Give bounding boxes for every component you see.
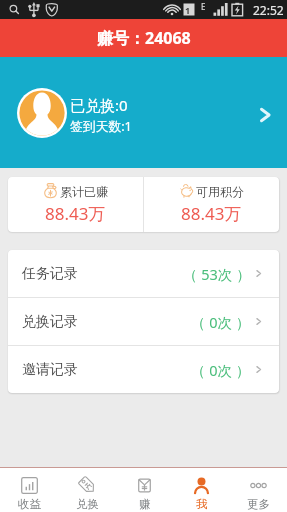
- staticText: （ 0次 ）: [191, 360, 251, 380]
- staticText: 兑换记录: [22, 313, 78, 331]
- staticText: 我: [196, 497, 208, 511]
- button[interactable]: 赚: [116, 468, 173, 512]
- staticText: 赚: [139, 497, 151, 511]
- staticText: 累计已赚: [60, 184, 108, 199]
- staticText: 可用积分: [196, 184, 244, 199]
- staticText: 邀请记录: [22, 361, 78, 379]
- button[interactable]: 累计已赚: [8, 177, 143, 232]
- staticText: 88.43万: [45, 202, 106, 225]
- staticText: 收益: [18, 497, 41, 511]
- staticText: 兑换: [76, 497, 99, 511]
- staticText: （ 0次 ）: [191, 312, 251, 332]
- button[interactable]: 可用积分: [144, 177, 279, 232]
- button[interactable]: 我: [173, 468, 230, 512]
- staticText: 1: [185, 4, 191, 16]
- staticText: 更多: [247, 497, 270, 511]
- button[interactable]: 已兑换:0: [0, 57, 287, 168]
- staticText: 88.43万: [181, 202, 242, 225]
- staticText: 任务记录: [22, 265, 78, 283]
- staticText: 赚号：24068: [97, 27, 191, 49]
- button[interactable]: 收益: [0, 468, 58, 512]
- button[interactable]: 任务记录: [8, 250, 279, 297]
- staticText: E: [201, 1, 206, 12]
- staticText: 签到天数:1: [70, 117, 132, 134]
- staticText: （ 53次 ）: [183, 264, 251, 284]
- staticText: 已兑换:0: [70, 95, 128, 115]
- button[interactable]: 邀请记录: [8, 346, 279, 393]
- button[interactable]: 兑换记录: [8, 298, 279, 345]
- staticText: 22:52: [253, 2, 284, 18]
- button[interactable]: 查看详情: [253, 103, 277, 127]
- button[interactable]: 兑换: [58, 468, 116, 512]
- button[interactable]: 更多: [230, 468, 287, 512]
